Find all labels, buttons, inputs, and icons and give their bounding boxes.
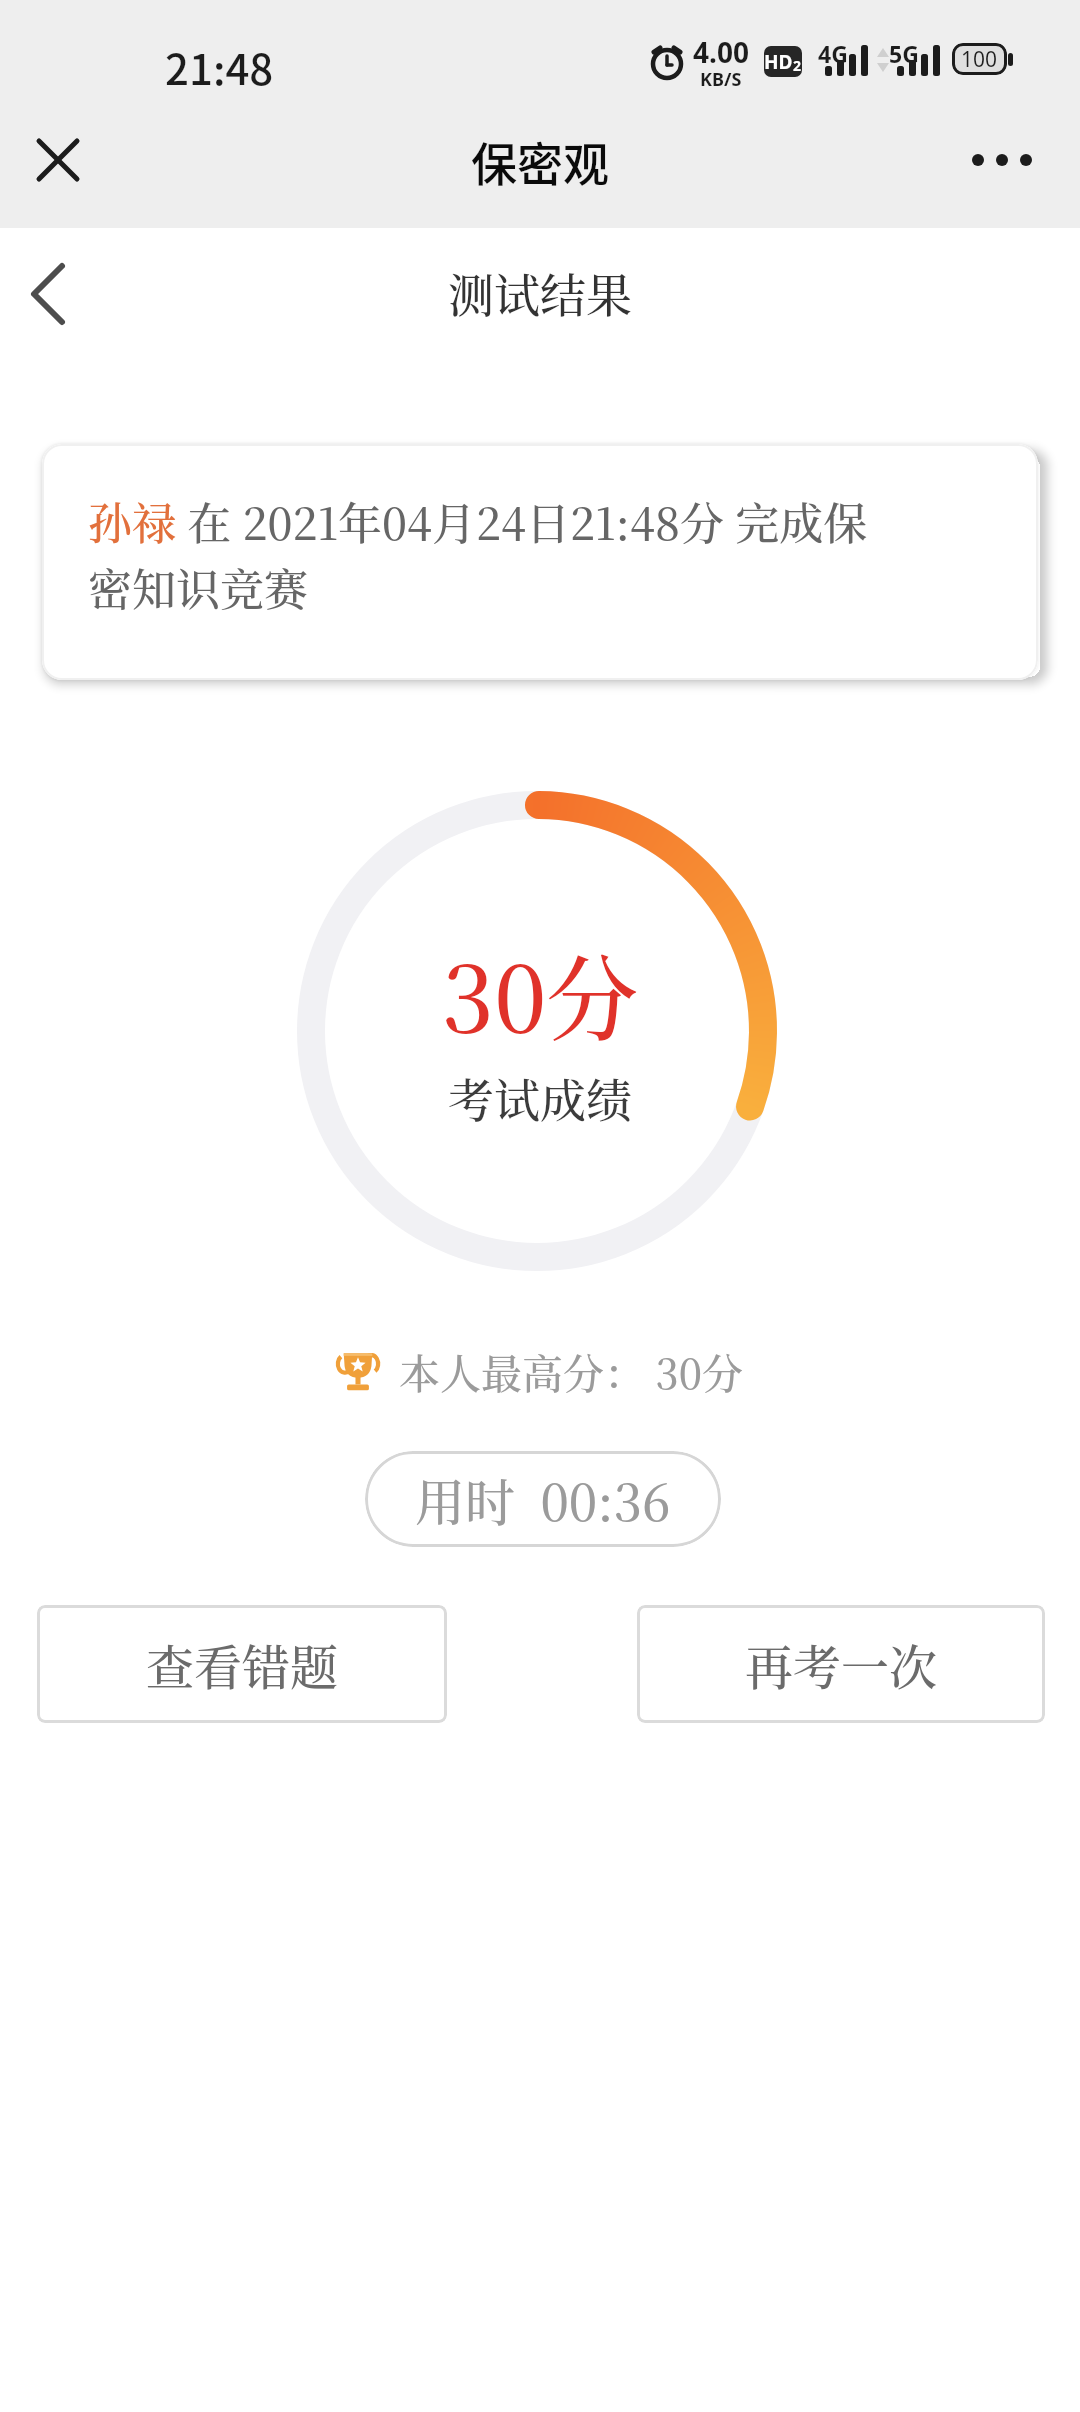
staticText: 查看错题 <box>146 1630 339 1699</box>
staticText: KB/S <box>700 67 742 92</box>
staticText: 本人最高分： 30分 <box>399 1342 743 1401</box>
button[interactable] <box>16 258 88 330</box>
staticText: 4G <box>818 38 848 69</box>
button[interactable] <box>965 132 1043 188</box>
staticText: 100 <box>961 45 998 74</box>
staticText: 4.00 <box>693 33 749 71</box>
staticText: 考试成绩 <box>448 1064 632 1128</box>
staticText: 2 <box>793 56 802 75</box>
staticText: 孙禄 在 2021年04月24日21:48分 完成保 密知识竞赛 <box>88 489 868 618</box>
staticText: 再考一次 <box>745 1630 938 1699</box>
staticText: 30分 <box>442 927 639 1043</box>
button[interactable]: 用时 00:36 <box>365 1451 721 1547</box>
button[interactable] <box>28 130 88 190</box>
staticText: 5G <box>889 38 919 69</box>
button[interactable]: 再考一次 <box>637 1605 1045 1723</box>
staticText: 用时 00:36 <box>415 1463 671 1535</box>
staticText: 测试结果 <box>448 259 632 325</box>
staticText: 保密观 <box>471 128 609 195</box>
staticText: 21:48 <box>165 36 274 97</box>
button[interactable]: 查看错题 <box>37 1605 447 1723</box>
staticText: HD <box>764 49 793 75</box>
